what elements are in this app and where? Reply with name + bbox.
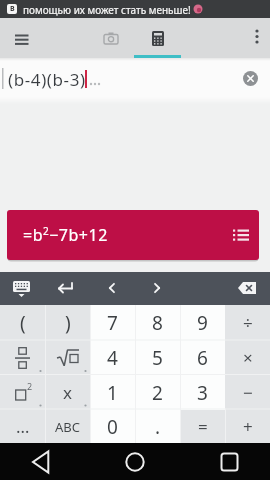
button[interactable]: …	[0, 410, 45, 443]
staticText: ABC	[55, 418, 80, 436]
button[interactable]: ABC	[45, 410, 90, 443]
staticText: (	[20, 310, 26, 336]
button[interactable]: 8	[135, 305, 180, 340]
button[interactable]	[26, 447, 56, 477]
staticText: ÷	[243, 311, 253, 334]
button[interactable]	[214, 447, 244, 477]
staticText: −	[243, 381, 253, 404]
button[interactable]	[234, 274, 262, 302]
button[interactable]	[0, 340, 45, 375]
button[interactable]	[244, 24, 270, 52]
staticText: 0	[107, 414, 118, 440]
staticText: 4	[107, 345, 118, 371]
staticText: x	[63, 381, 72, 404]
button[interactable]: 4	[90, 340, 135, 375]
staticText: =	[198, 415, 208, 438]
staticText: )	[65, 310, 71, 336]
button[interactable]: 6	[180, 340, 225, 375]
button[interactable]	[240, 68, 260, 88]
button[interactable]: −	[225, 375, 270, 410]
button[interactable]	[88, 18, 134, 58]
staticText: помощью их может стать меньше!	[23, 3, 191, 17]
staticText: 5	[152, 345, 163, 371]
staticText: B	[10, 4, 15, 14]
staticText: 2	[152, 380, 163, 406]
staticText: 7	[107, 310, 118, 336]
button[interactable]: 2	[0, 375, 45, 410]
staticText: 2	[27, 380, 33, 392]
button[interactable]: (	[0, 305, 45, 340]
button[interactable]	[97, 274, 125, 302]
staticText: (b-4)(b-3)	[8, 68, 86, 91]
button[interactable]: ×	[225, 340, 270, 375]
button[interactable]	[8, 26, 36, 52]
button[interactable]: .	[135, 410, 180, 443]
button[interactable]	[120, 447, 150, 477]
button[interactable]: 1	[90, 375, 135, 410]
staticText: 1	[107, 380, 118, 406]
staticText: 9	[197, 310, 208, 336]
button[interactable]: +	[225, 410, 270, 443]
button[interactable]	[144, 274, 172, 302]
button[interactable]: 5	[135, 340, 180, 375]
staticText: =b2−7b+12	[23, 224, 108, 246]
button[interactable]: =b2−7b+12	[7, 210, 259, 260]
staticText: ×	[243, 346, 253, 369]
button[interactable]: 9	[180, 305, 225, 340]
button[interactable]: ÷	[225, 305, 270, 340]
button[interactable]	[134, 18, 181, 58]
button[interactable]: x	[45, 375, 90, 410]
button[interactable]	[52, 274, 80, 302]
button[interactable]	[45, 340, 90, 375]
button[interactable]: 3	[180, 375, 225, 410]
button[interactable]: =	[180, 410, 225, 443]
button[interactable]: 0	[90, 410, 135, 443]
staticText: .	[155, 414, 161, 440]
staticText: +	[243, 415, 253, 438]
button[interactable]: 2	[135, 375, 180, 410]
button[interactable]: )	[45, 305, 90, 340]
button[interactable]	[8, 274, 36, 302]
staticText: 3	[197, 380, 208, 406]
button[interactable]: 7	[90, 305, 135, 340]
staticText: …	[16, 415, 30, 438]
staticText: 8	[152, 310, 163, 336]
staticText: 6	[197, 345, 208, 371]
